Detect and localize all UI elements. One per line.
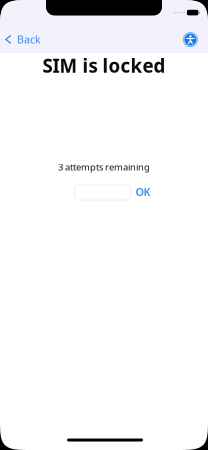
staticText: SIM is locked [42, 53, 165, 78]
button[interactable]: OK [130, 181, 155, 203]
button[interactable]: Accessibility Shortcut [179, 29, 201, 50]
staticText: OK [135, 185, 150, 199]
button[interactable]: Back [0, 26, 47, 52]
staticText: Back [17, 32, 41, 46]
staticText: 3 attempts remaining [58, 161, 150, 173]
